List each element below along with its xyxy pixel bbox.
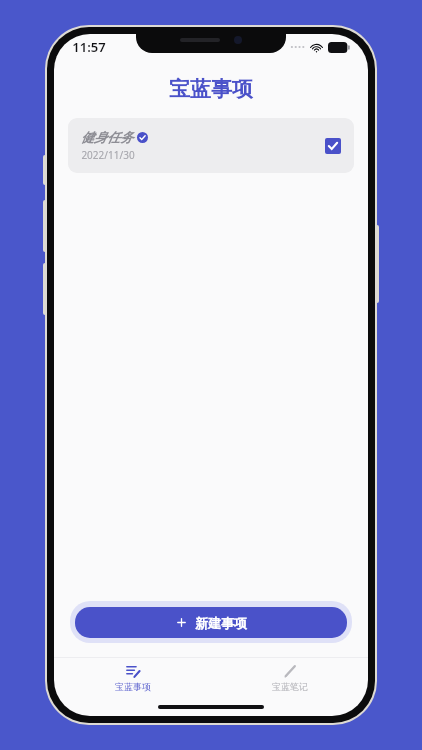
- staticText: 11:57: [72, 38, 106, 56]
- button[interactable]: Toggle task complete: [325, 138, 341, 154]
- button[interactable]: 宝蓝事项: [54, 658, 211, 698]
- button[interactable]: 健身任务: [68, 118, 354, 173]
- staticText: 新建事项: [195, 615, 247, 631]
- button[interactable]: 宝蓝笔记: [211, 658, 368, 698]
- staticText: 宝蓝笔记: [272, 681, 308, 692]
- staticText: 宝蓝事项: [115, 681, 151, 692]
- staticText: 宝蓝事项: [169, 76, 253, 102]
- staticText: 2022/11/30: [81, 148, 135, 162]
- staticText: 健身任务: [81, 129, 133, 145]
- button[interactable]: 新建事项: [75, 607, 347, 638]
